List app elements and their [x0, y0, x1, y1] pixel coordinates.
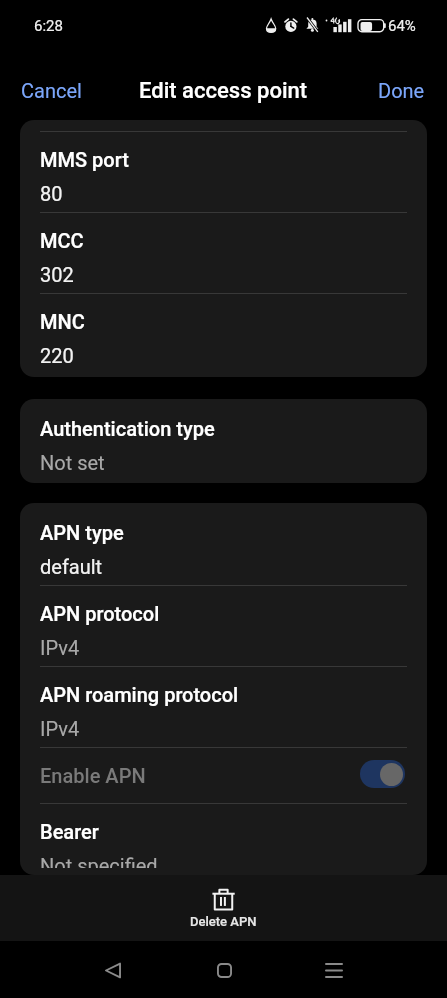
- button[interactable]: APN protocol: [20, 586, 427, 666]
- staticText: Enable APN: [40, 764, 362, 787]
- staticText: Authentication type: [40, 417, 215, 440]
- button[interactable]: Authentication type: [20, 399, 427, 483]
- staticText: 80: [40, 182, 63, 205]
- button[interactable]: Home: [195, 942, 253, 998]
- staticText: MNC: [40, 310, 85, 333]
- staticText: Done: [378, 79, 425, 102]
- button[interactable]: Cancel: [9, 69, 94, 112]
- staticText: Delete APN: [190, 914, 257, 929]
- button[interactable]: MNC: [20, 294, 427, 377]
- staticText: APN protocol: [40, 602, 160, 625]
- staticText: Bearer: [40, 820, 99, 843]
- button[interactable]: MMS port: [20, 132, 427, 212]
- staticText: 302: [40, 263, 74, 286]
- button[interactable]: APN roaming protocol: [20, 667, 427, 747]
- staticText: 220: [40, 344, 74, 367]
- staticText: IPv4: [40, 717, 80, 740]
- staticText: Not set: [40, 451, 105, 474]
- staticText: Not specified: [40, 854, 158, 868]
- button[interactable]: MCC: [20, 213, 427, 293]
- staticText: MCC: [40, 229, 84, 252]
- button[interactable]: Back: [84, 942, 142, 998]
- button[interactable]: Bearer: [20, 804, 427, 875]
- button[interactable]: APN type: [20, 503, 427, 585]
- staticText: IPv4: [40, 636, 80, 659]
- staticText: 6:28: [34, 17, 63, 35]
- staticText: Cancel: [21, 79, 82, 102]
- button[interactable]: Done: [366, 69, 437, 112]
- staticText: APN roaming protocol: [40, 683, 239, 706]
- staticText: MMS port: [40, 148, 129, 171]
- staticText: APN type: [40, 521, 124, 544]
- button[interactable]: Delete APN: [0, 875, 447, 941]
- button[interactable]: Enable APN: [20, 748, 427, 803]
- button[interactable]: Recent apps: [305, 942, 363, 998]
- staticText: Edit access point: [139, 78, 308, 104]
- staticText: 64%: [388, 17, 416, 35]
- staticText: default: [40, 555, 103, 578]
